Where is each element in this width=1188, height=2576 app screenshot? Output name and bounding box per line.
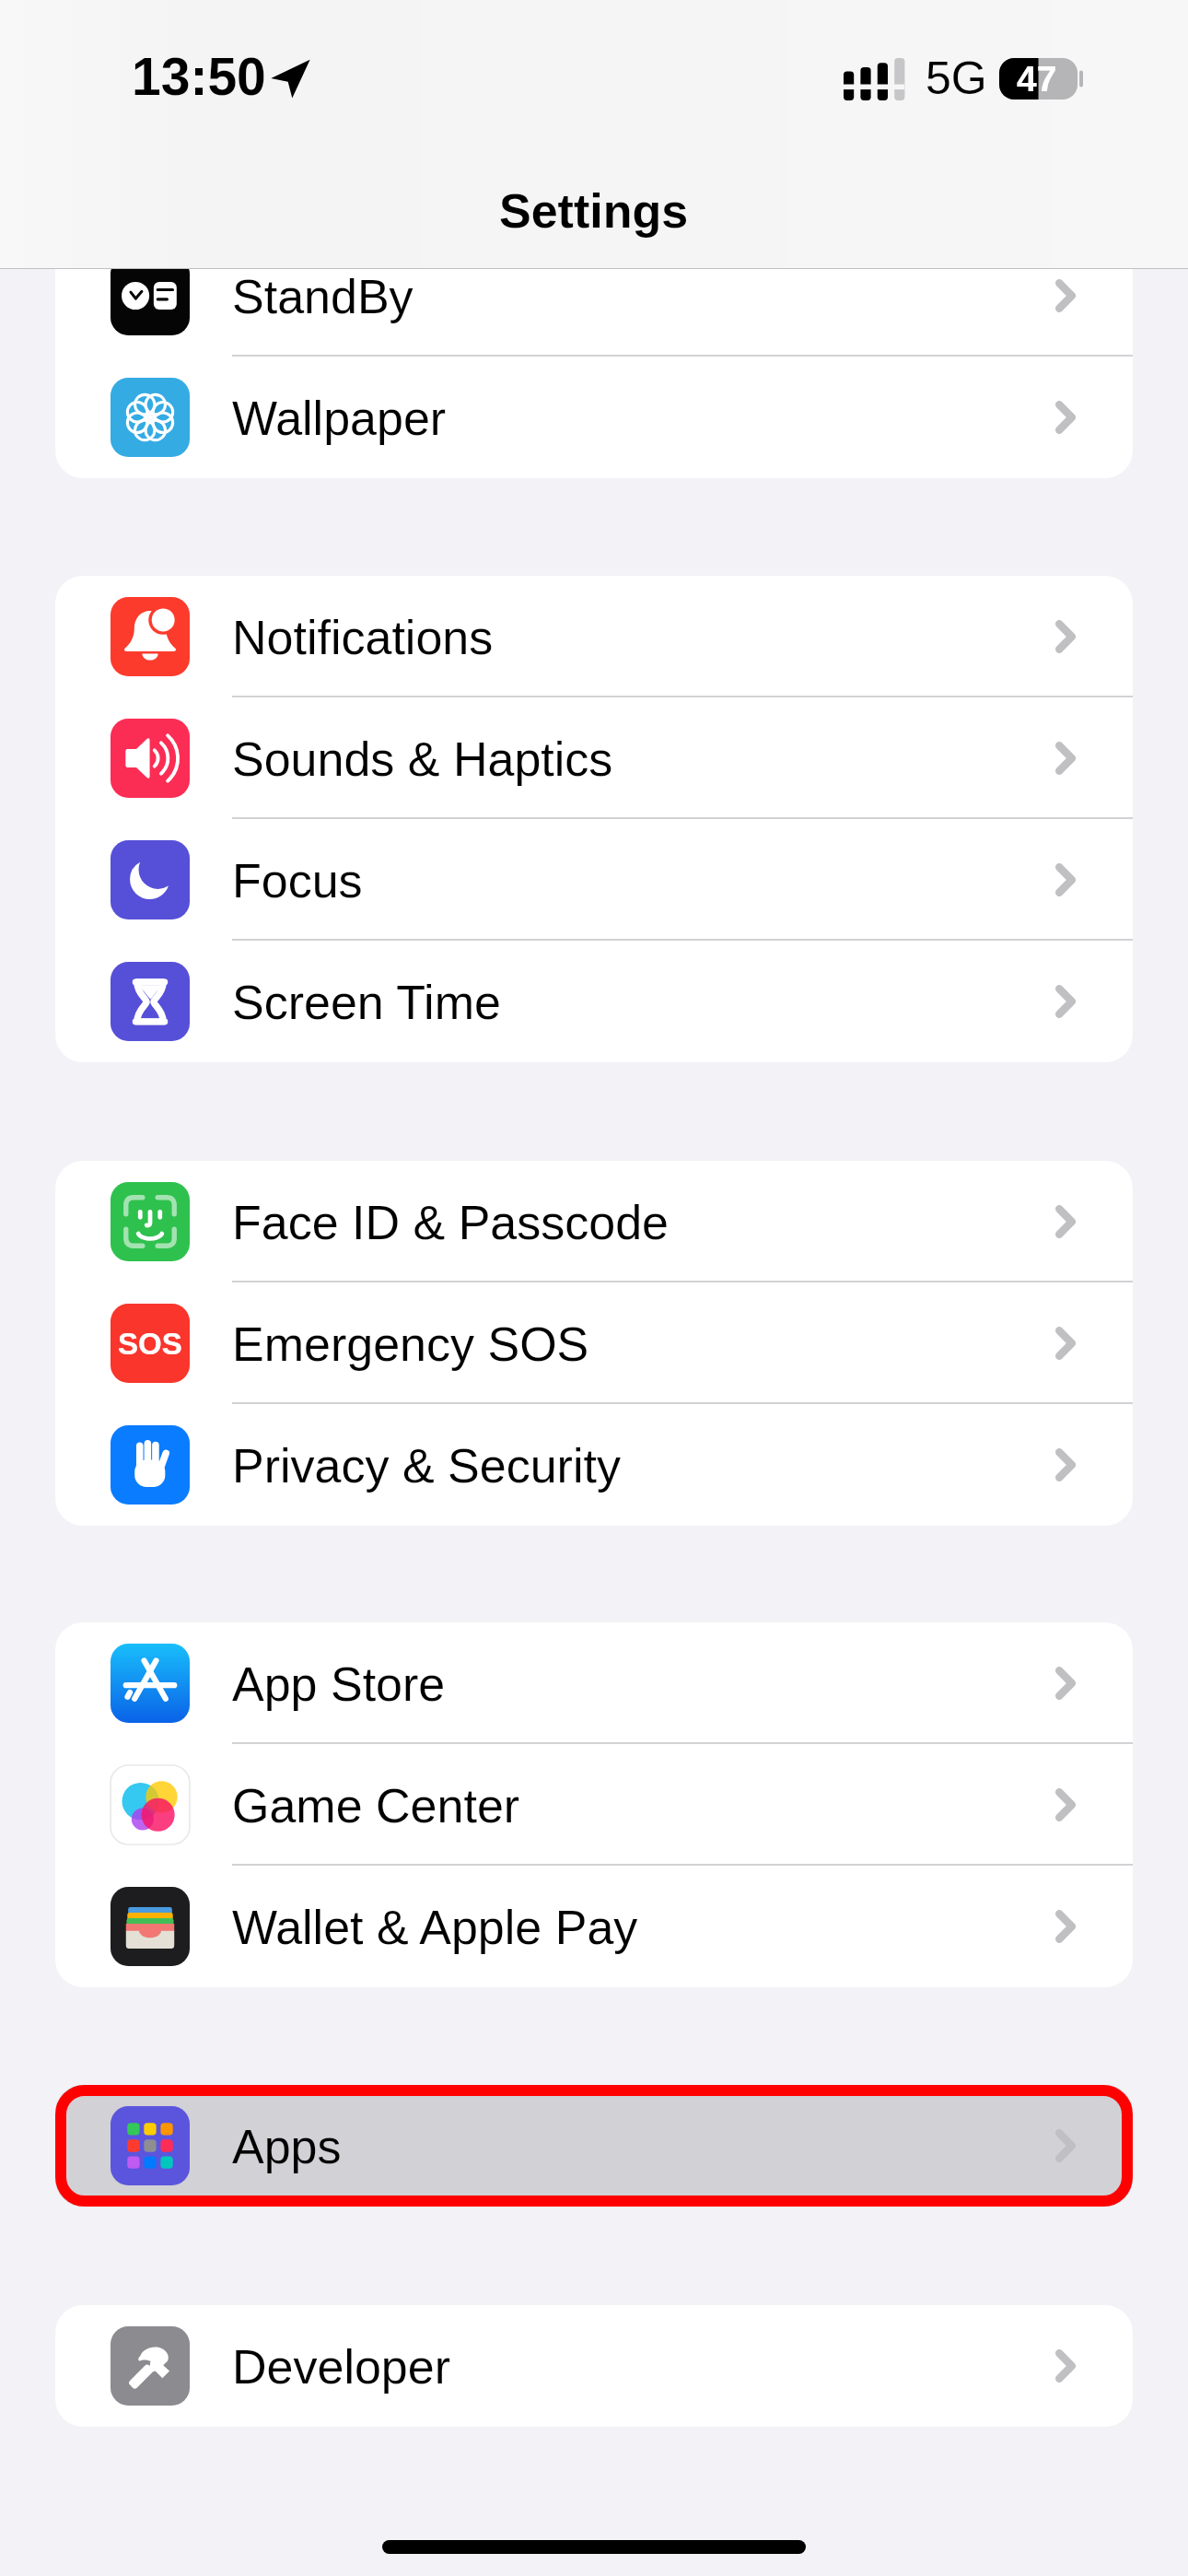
- staticText: Notifications: [232, 611, 494, 664]
- other: Open: [1055, 742, 1076, 775]
- staticText: SOS: [118, 1327, 182, 1361]
- button[interactable]: Privacy & Security: [55, 1404, 1133, 1526]
- staticText: Developer: [232, 2340, 451, 2394]
- button[interactable]: Screen Time: [55, 941, 1133, 1062]
- other: Open: [1055, 2349, 1076, 2383]
- button[interactable]: Wallet & Apple Pay: [55, 1866, 1133, 1987]
- other: Open: [1055, 1910, 1076, 1943]
- other: Open: [1055, 401, 1076, 434]
- staticText: App Store: [232, 1657, 446, 1711]
- other: Open: [1055, 863, 1076, 896]
- other: Open: [1055, 279, 1076, 312]
- staticText: Focus: [232, 854, 363, 907]
- staticText: Apps: [232, 2120, 342, 2173]
- button[interactable]: Wallpaper: [55, 357, 1133, 478]
- button[interactable]: Apps: [55, 2085, 1133, 2207]
- button[interactable]: App Store: [55, 1622, 1133, 1744]
- staticText: Face ID & Passcode: [232, 1196, 669, 1249]
- button[interactable]: SOS: [55, 1282, 1133, 1404]
- other: Open: [1055, 1667, 1076, 1700]
- staticText: 5G: [926, 53, 987, 104]
- staticText: Emergency SOS: [232, 1317, 589, 1371]
- other: Open: [1055, 1327, 1076, 1360]
- staticText: Screen Time: [232, 976, 501, 1029]
- button[interactable]: Sounds & Haptics: [55, 697, 1133, 819]
- staticText: Settings: [499, 184, 689, 238]
- other: Open: [1055, 1448, 1076, 1481]
- button[interactable]: Game Center: [55, 1744, 1133, 1866]
- other: Open: [1055, 1788, 1076, 1821]
- staticText: Sounds & Haptics: [232, 732, 613, 786]
- button[interactable]: Face ID & Passcode: [55, 1161, 1133, 1282]
- staticText: 47: [1017, 59, 1057, 100]
- staticText: Game Center: [232, 1779, 520, 1832]
- staticText: 13:50: [132, 47, 266, 106]
- staticText: Privacy & Security: [232, 1439, 621, 1493]
- other: Open: [1055, 2129, 1076, 2162]
- button[interactable]: Developer: [55, 2305, 1133, 2427]
- staticText: StandBy: [232, 270, 413, 323]
- staticText: Wallet & Apple Pay: [232, 1901, 638, 1954]
- other: Open: [1055, 620, 1076, 653]
- button[interactable]: StandBy: [55, 235, 1133, 357]
- button[interactable]: Notifications: [55, 576, 1133, 697]
- staticText: Wallpaper: [232, 392, 447, 445]
- other: Open: [1055, 985, 1076, 1018]
- other: Open: [1055, 1205, 1076, 1238]
- button[interactable]: Focus: [55, 819, 1133, 941]
